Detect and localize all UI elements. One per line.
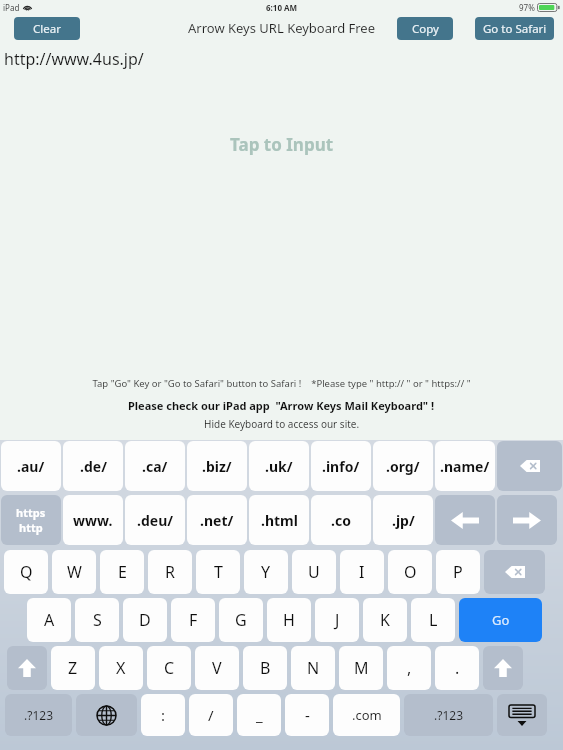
staticText: Arrow Keys URL Keyboard Free [188,19,376,37]
button[interactable]: I [340,550,384,594]
staticText: .jp/ [392,511,415,530]
button[interactable]: www. [63,495,123,545]
staticText: .de/ [80,457,107,476]
button[interactable]: Go to Safari [475,17,554,40]
button[interactable]: .net/ [187,495,247,545]
staticText: .?123 [434,707,464,723]
button[interactable]: .com [333,694,400,736]
button[interactable]: Backspace [497,441,562,491]
staticText: .deu/ [137,511,174,530]
staticText: U [308,561,320,583]
staticText: P [453,561,463,583]
button[interactable]: Move cursor right [497,495,557,545]
button[interactable]: L [411,598,455,642]
button[interactable]: http://www.4us.jp/ [4,48,144,70]
button[interactable]: .?123 [404,694,493,736]
button[interactable]: . [435,646,479,690]
button[interactable]: V [195,646,239,690]
button[interactable]: N [291,646,335,690]
button[interactable]: P [436,550,480,594]
button[interactable]: W [52,550,96,594]
button[interactable]: .ca/ [125,441,185,491]
button[interactable]: Hide keyboard [497,694,547,736]
staticText: https [16,505,46,520]
staticText: .name/ [440,457,490,476]
staticText: S [93,609,102,631]
button[interactable]: .jp/ [373,495,433,545]
button[interactable]: , [387,646,431,690]
button[interactable]: X [99,646,143,690]
staticText: .html [261,511,298,530]
button[interactable]: .name/ [435,441,495,491]
button[interactable]: .?123 [5,694,72,736]
button[interactable]: .deu/ [125,495,185,545]
button[interactable]: Backspace [484,550,545,594]
staticText: .?123 [24,707,54,723]
button[interactable]: O [388,550,432,594]
staticText: Tap "Go" Key or "Go to Safari" button to… [92,377,471,390]
button[interactable]: G [219,598,263,642]
staticText: W [67,561,82,583]
staticText: / [208,705,214,725]
button[interactable]: .info/ [311,441,371,491]
staticText: C [164,657,175,679]
button[interactable]: / [189,694,233,736]
button[interactable]: .biz/ [187,441,247,491]
staticText: Q [20,561,33,583]
staticText: www. [73,511,113,530]
staticText: .uk/ [265,457,293,476]
button[interactable]: Z [51,646,95,690]
staticText: . [455,657,460,679]
button[interactable]: Toggle https or http [1,495,61,545]
button[interactable]: Clear [14,17,80,40]
button[interactable]: E [100,550,144,594]
button[interactable]: T [196,550,240,594]
button[interactable]: .org/ [373,441,433,491]
staticText: X [116,657,126,679]
button[interactable]: Shift [483,646,523,690]
button[interactable]: B [243,646,287,690]
staticText: F [189,609,198,631]
button[interactable]: _ [237,694,281,736]
staticText: Go [492,611,510,629]
staticText: J [335,609,340,631]
button[interactable]: Copy [397,17,453,40]
button[interactable]: Y [244,550,288,594]
button[interactable]: : [141,694,185,736]
button[interactable]: .uk/ [249,441,309,491]
button[interactable]: U [292,550,336,594]
button[interactable]: .de/ [63,441,123,491]
staticText: N [307,657,320,679]
staticText: K [380,609,390,631]
staticText: .net/ [200,511,234,530]
staticText: .info/ [322,457,360,476]
button[interactable]: F [171,598,215,642]
button[interactable]: C [147,646,191,690]
button[interactable]: Shift [7,646,47,690]
button[interactable]: J [315,598,359,642]
button[interactable]: Go [459,598,542,642]
button[interactable]: H [267,598,311,642]
staticText: : [161,705,166,725]
button[interactable]: Q [4,550,48,594]
button[interactable]: .html [249,495,309,545]
button[interactable]: K [363,598,407,642]
button[interactable]: .au/ [1,441,61,491]
button[interactable]: R [148,550,192,594]
staticText: V [212,657,222,679]
button[interactable]: S [75,598,119,642]
button[interactable]: A [27,598,71,642]
button[interactable]: D [123,598,167,642]
button[interactable]: Switch keyboard [76,694,137,736]
button[interactable]: M [339,646,383,690]
staticText: .co [331,511,351,530]
staticText: G [235,609,247,631]
staticText: Please check our iPad app "Arrow Keys Ma… [128,398,435,413]
staticText: T [214,561,223,583]
staticText: .com [352,706,382,724]
button[interactable]: .co [311,495,371,545]
button[interactable]: Tap to Input [0,76,563,377]
button[interactable]: Move cursor left [435,495,495,545]
staticText: Copy [412,21,439,37]
button[interactable]: - [285,694,329,736]
